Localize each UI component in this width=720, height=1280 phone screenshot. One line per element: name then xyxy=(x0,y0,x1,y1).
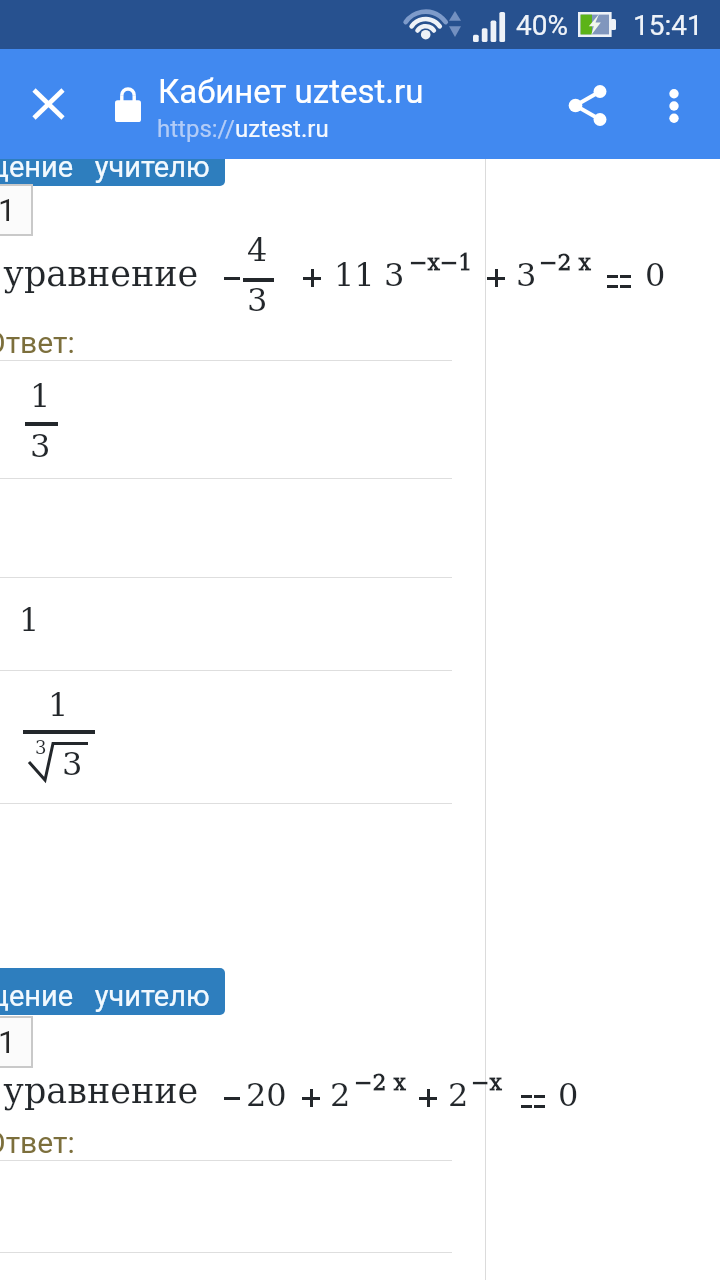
staticText: Решите уравнение xyxy=(0,1071,199,1112)
staticText: Сообщение учителю xyxy=(0,150,210,184)
staticText: https:// xyxy=(157,115,235,143)
staticText: 3 xyxy=(516,256,537,293)
staticText: −x−1 xyxy=(409,250,473,276)
staticText: 4 xyxy=(247,231,268,268)
staticText: 3 xyxy=(30,427,51,464)
button[interactable]: Сообщение учителю xyxy=(0,139,225,186)
staticText: −2 x xyxy=(539,250,591,276)
staticText: 3 xyxy=(384,256,405,293)
staticText: 2 xyxy=(330,1076,351,1113)
staticText: Сообщение учителю xyxy=(0,979,210,1013)
staticText: 11 xyxy=(334,256,375,293)
staticText: 3 xyxy=(35,737,47,758)
staticText: 3 xyxy=(62,745,83,782)
button[interactable]: Close xyxy=(8,49,88,159)
staticText: 1 xyxy=(19,601,40,638)
staticText: uztest.ru xyxy=(235,115,329,143)
staticText: Кабинет uztest.ru xyxy=(158,72,424,111)
staticText: 40% xyxy=(516,9,568,42)
staticText: 0 xyxy=(645,256,666,293)
staticText: 1 xyxy=(0,1024,16,1060)
staticText: Решите уравнение xyxy=(0,254,199,295)
staticText: 15:41 xyxy=(633,9,703,42)
staticText: 20 xyxy=(246,1076,287,1113)
staticText: 2 xyxy=(448,1076,469,1113)
button[interactable]: Share xyxy=(543,49,631,159)
staticText: −2 x xyxy=(354,1070,406,1096)
staticText: −x xyxy=(471,1070,502,1096)
staticText: Ответ: xyxy=(0,1125,75,1160)
staticText: 0 xyxy=(558,1076,579,1113)
staticText: 3 xyxy=(247,281,268,318)
staticText: 1 xyxy=(48,686,69,723)
staticText: 1 xyxy=(30,377,51,414)
button[interactable]: More options xyxy=(631,49,720,159)
staticText: Ответ: xyxy=(0,325,75,360)
button[interactable]: Сообщение учителю xyxy=(0,968,225,1015)
staticText: 1 xyxy=(0,192,16,228)
